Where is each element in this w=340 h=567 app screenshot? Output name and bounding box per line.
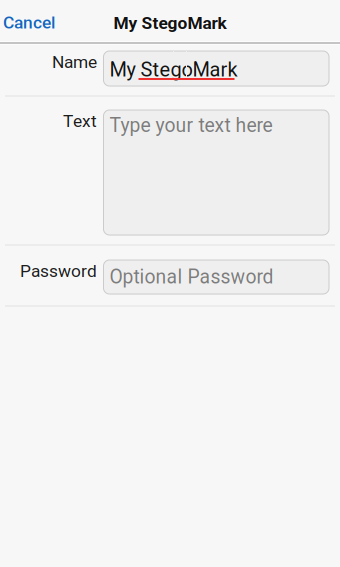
button[interactable]: My StegoMark bbox=[103, 51, 329, 86]
button[interactable]: Type your text here bbox=[103, 110, 329, 235]
staticText: Password bbox=[20, 261, 97, 281]
staticText: Text bbox=[63, 111, 97, 131]
staticText: Type your text here bbox=[109, 114, 272, 137]
button[interactable]: Optional Password bbox=[103, 260, 329, 294]
staticText: Name bbox=[52, 52, 97, 72]
staticText: My StegoMark bbox=[113, 13, 226, 33]
staticText: Cancel bbox=[3, 12, 55, 33]
button[interactable]: Cancel bbox=[0, 0, 65, 42]
staticText: Optional Password bbox=[109, 266, 273, 288]
staticText: My StegoMark bbox=[109, 58, 237, 81]
